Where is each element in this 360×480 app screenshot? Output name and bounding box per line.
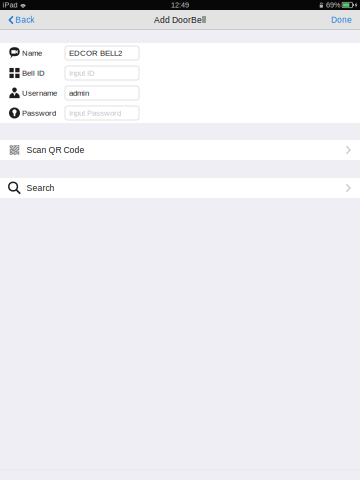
staticText: Username <box>22 89 57 97</box>
button[interactable]: Scan QR Code <box>0 140 360 160</box>
button[interactable]: Done <box>323 10 360 30</box>
staticText: admin <box>69 89 89 97</box>
staticText: iPad <box>2 1 17 9</box>
staticText: 69% <box>326 1 340 9</box>
button[interactable]: Back <box>0 10 40 30</box>
button[interactable]: EDCOR BELL2 <box>65 46 139 60</box>
staticText: EDCOR BELL2 <box>69 49 122 57</box>
button[interactable]: Search <box>0 178 360 198</box>
staticText: Scan QR Code <box>26 145 84 155</box>
staticText: 12:49 <box>171 1 189 9</box>
staticText: Search <box>26 183 54 193</box>
staticText: Add DoorBell <box>154 15 206 25</box>
staticText: Input ID <box>69 69 95 77</box>
staticText: Done <box>331 15 352 25</box>
staticText: Input Password <box>69 109 121 117</box>
button[interactable]: Input Password <box>65 106 139 120</box>
button[interactable]: Input ID <box>65 66 139 80</box>
button[interactable]: admin <box>65 86 139 100</box>
staticText: Back <box>15 15 34 25</box>
staticText: Name <box>22 49 42 57</box>
staticText: Bell ID <box>22 69 45 77</box>
staticText: Password <box>22 109 56 117</box>
